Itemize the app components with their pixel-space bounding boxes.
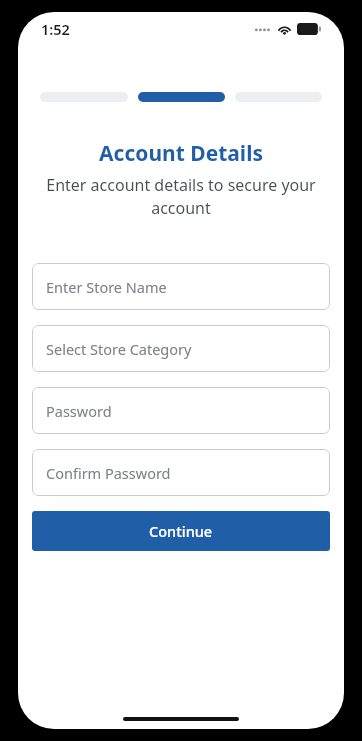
- staticText: Enter account details to secure your acc…: [20, 174, 342, 219]
- button[interactable]: Continue: [32, 511, 330, 551]
- button[interactable]: Select Store Category: [32, 325, 330, 372]
- staticText: 1:52: [41, 19, 70, 39]
- staticText: Password: [46, 401, 112, 421]
- staticText: Continue: [149, 521, 213, 541]
- staticText: Account Details: [18, 139, 344, 168]
- staticText: Select Store Category: [46, 339, 192, 359]
- staticText: Enter Store Name: [46, 277, 167, 297]
- button[interactable]: Password: [32, 387, 330, 434]
- staticText: Confirm Password: [46, 463, 171, 483]
- button[interactable]: [138, 92, 225, 102]
- button[interactable]: Enter Store Name: [32, 263, 330, 310]
- button[interactable]: Confirm Password: [32, 449, 330, 496]
